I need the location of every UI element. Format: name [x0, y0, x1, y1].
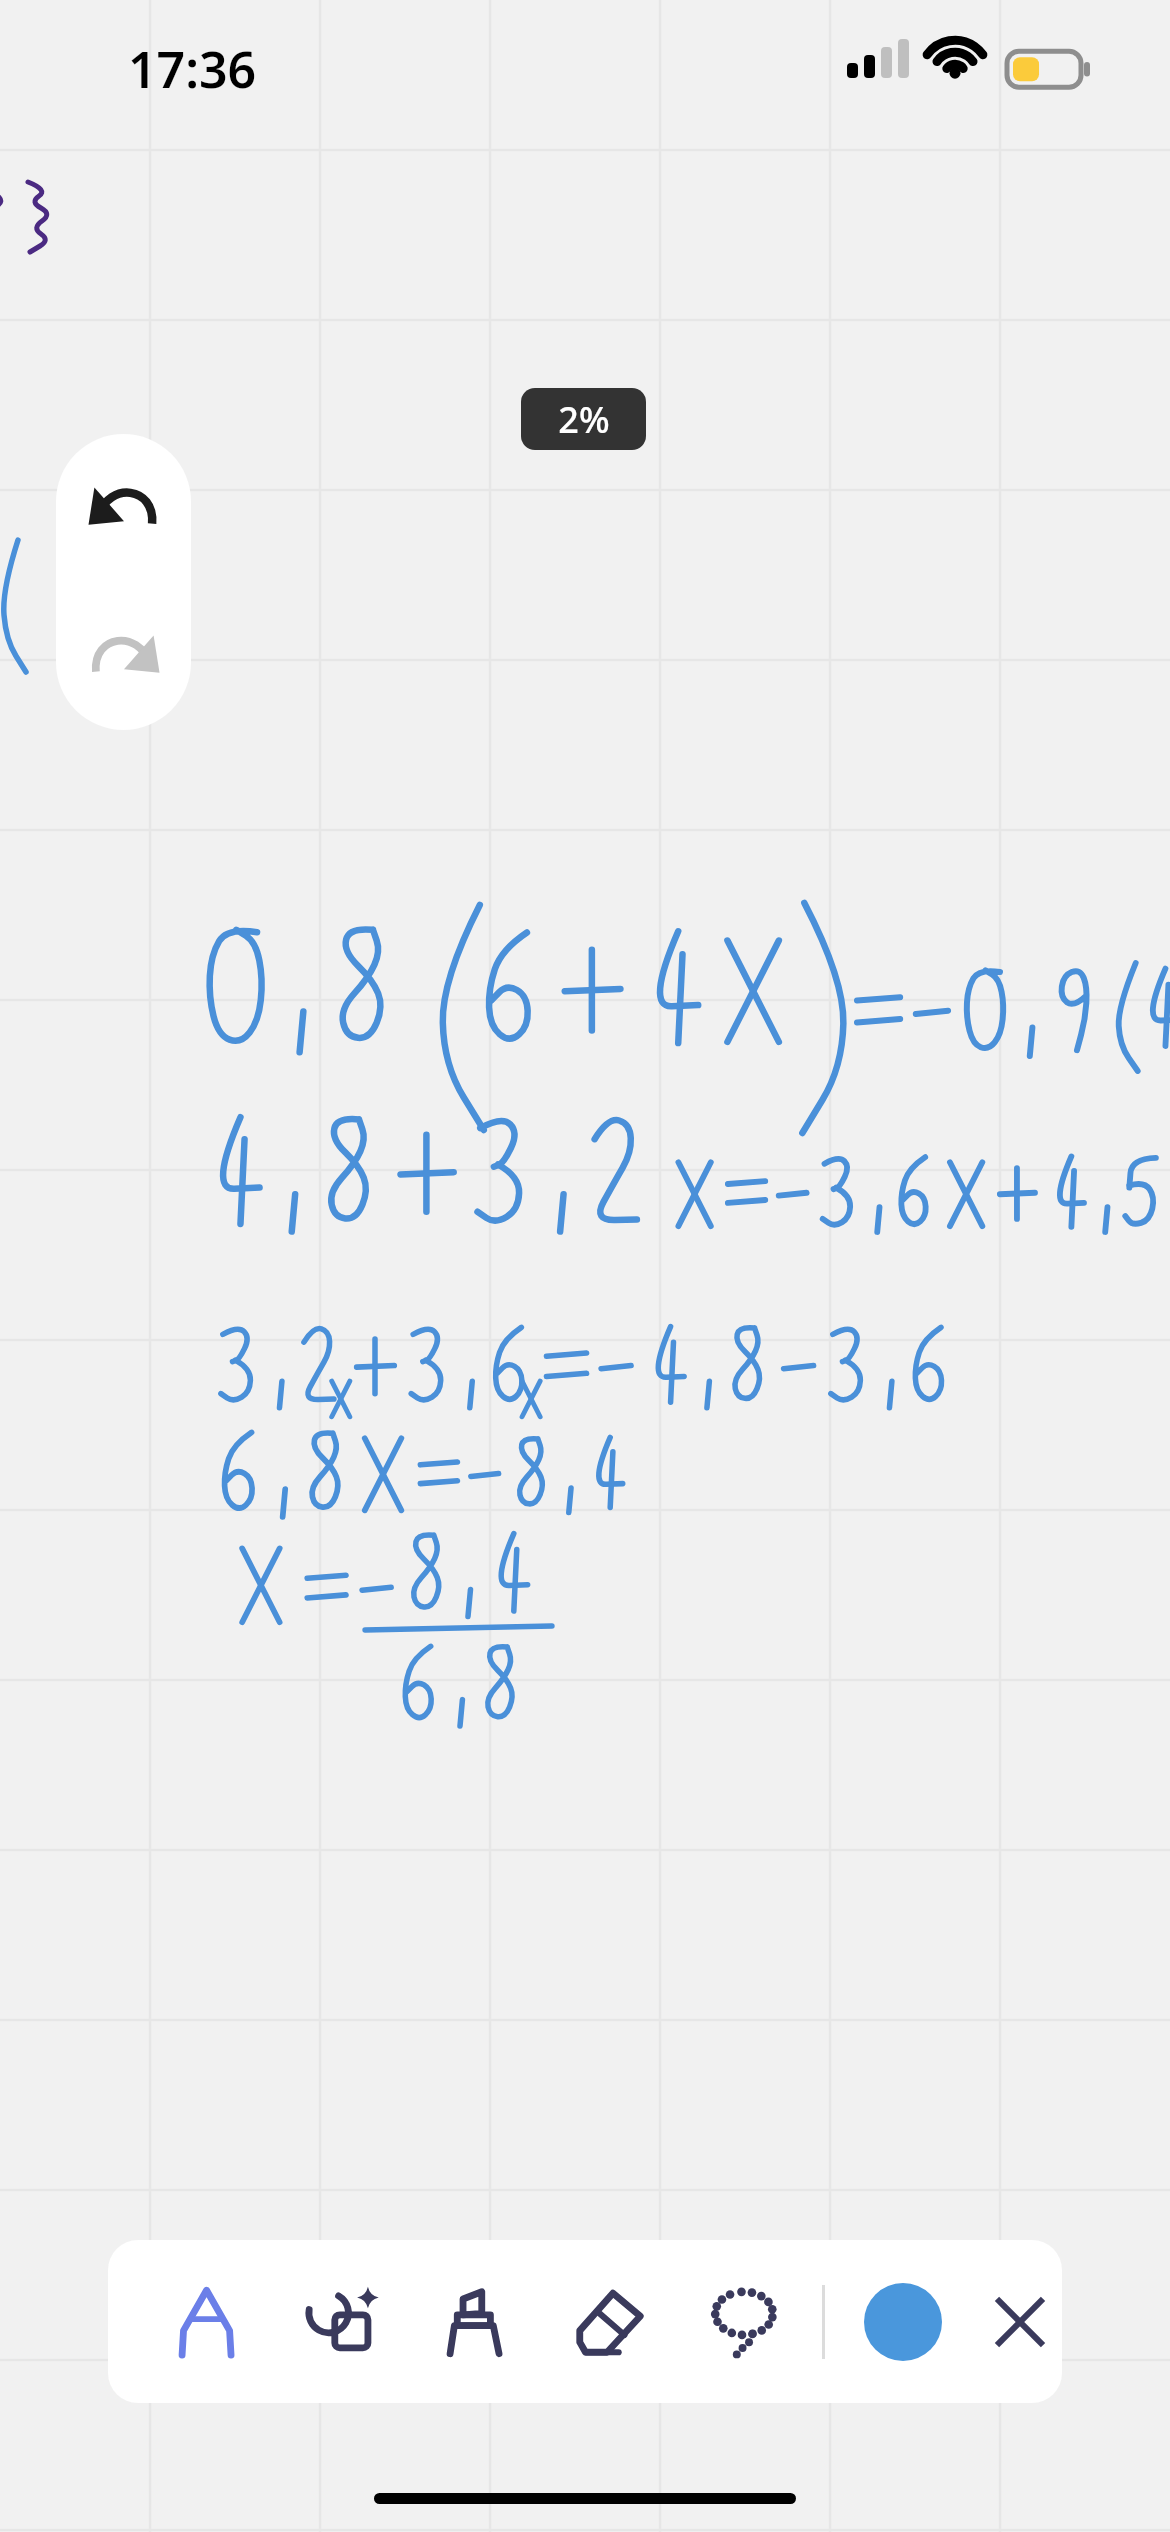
button[interactable]: Pen	[156, 2270, 260, 2374]
staticText: 17:36	[128, 35, 257, 103]
button[interactable]: Undo	[56, 434, 191, 582]
button[interactable]: Lasso select	[692, 2270, 796, 2374]
button[interactable]: Close	[977, 2270, 1062, 2374]
button[interactable]: Redo	[56, 582, 191, 730]
staticText: 2%	[558, 395, 610, 444]
button[interactable]: Eraser	[558, 2270, 662, 2374]
button[interactable]: Shape assist	[290, 2270, 394, 2374]
button[interactable]: Colour: blue	[851, 2270, 955, 2374]
button[interactable]: Highlighter	[424, 2270, 528, 2374]
button[interactable]: 2%	[521, 388, 646, 450]
